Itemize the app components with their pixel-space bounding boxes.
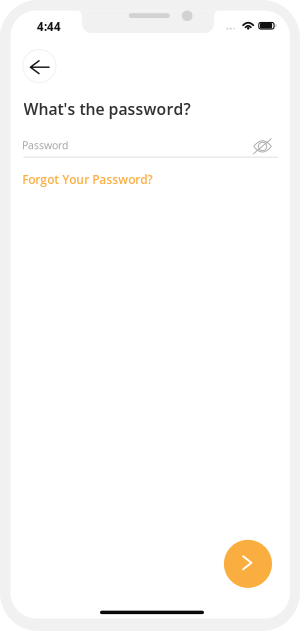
staticText: 4:44 (37, 19, 61, 34)
button[interactable]: Forgot Your Password? (22, 168, 152, 190)
button[interactable]: Back (22, 49, 56, 83)
button[interactable]: Show password (250, 135, 276, 157)
staticText: Forgot Your Password? (22, 171, 152, 187)
staticText: What's the password? (23, 98, 190, 120)
button[interactable]: Continue (224, 540, 272, 588)
staticText: Password (22, 138, 68, 152)
